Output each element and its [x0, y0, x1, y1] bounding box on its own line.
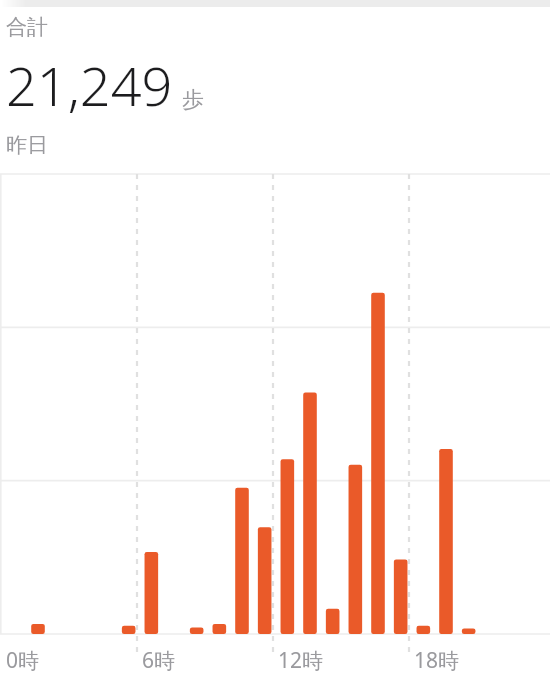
- staticText: 歩: [182, 86, 204, 114]
- staticText: 21,249: [6, 48, 173, 122]
- staticText: 0時: [6, 646, 40, 675]
- button[interactable]: Hourly step chart: [0, 174, 550, 676]
- staticText: 18時: [414, 646, 460, 675]
- staticText: 昨日: [6, 132, 48, 158]
- staticText: 6時: [142, 646, 176, 675]
- staticText: 合計: [6, 14, 48, 40]
- staticText: 12時: [278, 646, 324, 675]
